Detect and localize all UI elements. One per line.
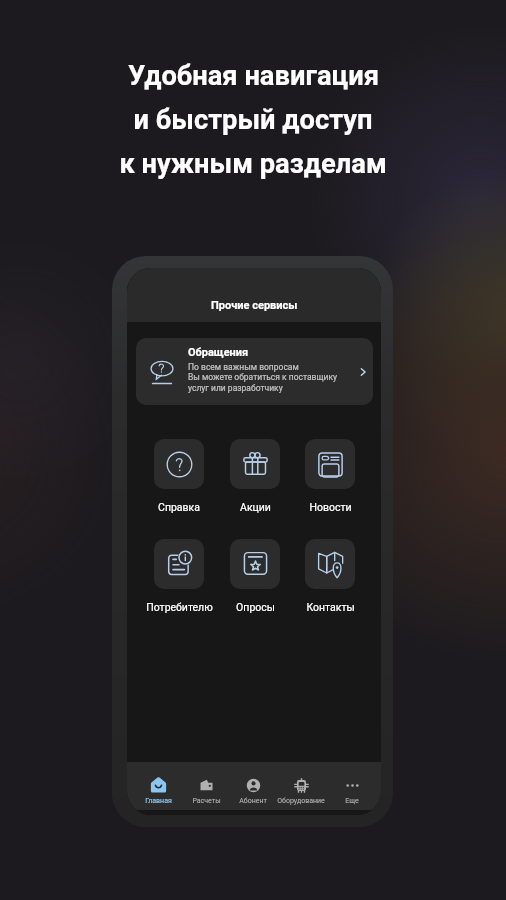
staticText: Контакты — [306, 601, 355, 613]
button[interactable]: Новости — [295, 439, 365, 513]
staticText: и быстрый доступ — [133, 104, 373, 136]
button[interactable]: Еще — [325, 778, 379, 805]
button[interactable]: Обращения — [136, 338, 373, 405]
staticText: Опросы — [236, 601, 275, 613]
staticText: Обращения — [188, 346, 249, 359]
button[interactable]: Опросы — [220, 539, 290, 613]
staticText: Удобная навигация — [128, 60, 379, 92]
button[interactable]: Оборудование — [274, 778, 328, 805]
button[interactable]: Абонент — [226, 778, 280, 805]
staticText: Акции — [240, 501, 271, 513]
button[interactable]: Справка — [144, 439, 214, 513]
staticText: Справка — [158, 501, 200, 513]
staticText: Главная — [145, 797, 172, 805]
button[interactable]: Главная — [131, 778, 185, 805]
staticText: Еще — [345, 797, 359, 805]
staticText: Расчеты — [192, 797, 221, 805]
button[interactable]: Расчеты — [179, 778, 233, 805]
staticText: Потребителю — [146, 601, 213, 613]
staticText: По всем важным вопросам Вы можете обрати… — [188, 362, 338, 393]
staticText: Прочие сервисы — [211, 299, 298, 312]
staticText: Абонент — [239, 797, 267, 805]
staticText: Новости — [309, 501, 352, 513]
staticText: Оборудование — [277, 797, 325, 805]
button[interactable]: Контакты — [295, 539, 365, 613]
button[interactable]: Акции — [220, 439, 290, 513]
button[interactable]: Потребителю — [144, 539, 214, 613]
staticText: к нужным разделам — [119, 148, 387, 180]
